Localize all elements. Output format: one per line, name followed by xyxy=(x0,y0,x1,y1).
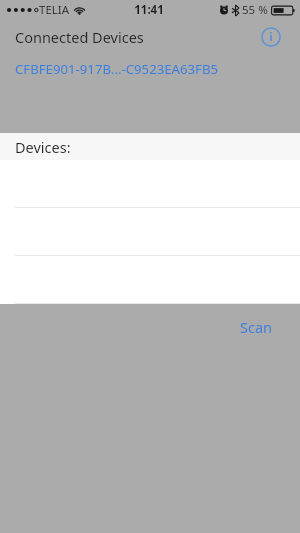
staticText: CFBFE901-917B...-C9523EA63FB5 xyxy=(15,60,219,78)
staticText: 11:41 xyxy=(134,2,164,18)
staticText: Devices: xyxy=(15,137,71,157)
button[interactable]: Information xyxy=(259,25,283,49)
button[interactable]: CFBFE901-917B...-C9523EA63FB5 xyxy=(15,60,219,78)
staticText: TELIA xyxy=(39,2,70,18)
staticText: 55 % xyxy=(242,2,268,18)
button[interactable]: Scan xyxy=(240,317,273,337)
staticText: Scan xyxy=(240,317,273,337)
staticText: Connected Devices xyxy=(15,27,144,47)
